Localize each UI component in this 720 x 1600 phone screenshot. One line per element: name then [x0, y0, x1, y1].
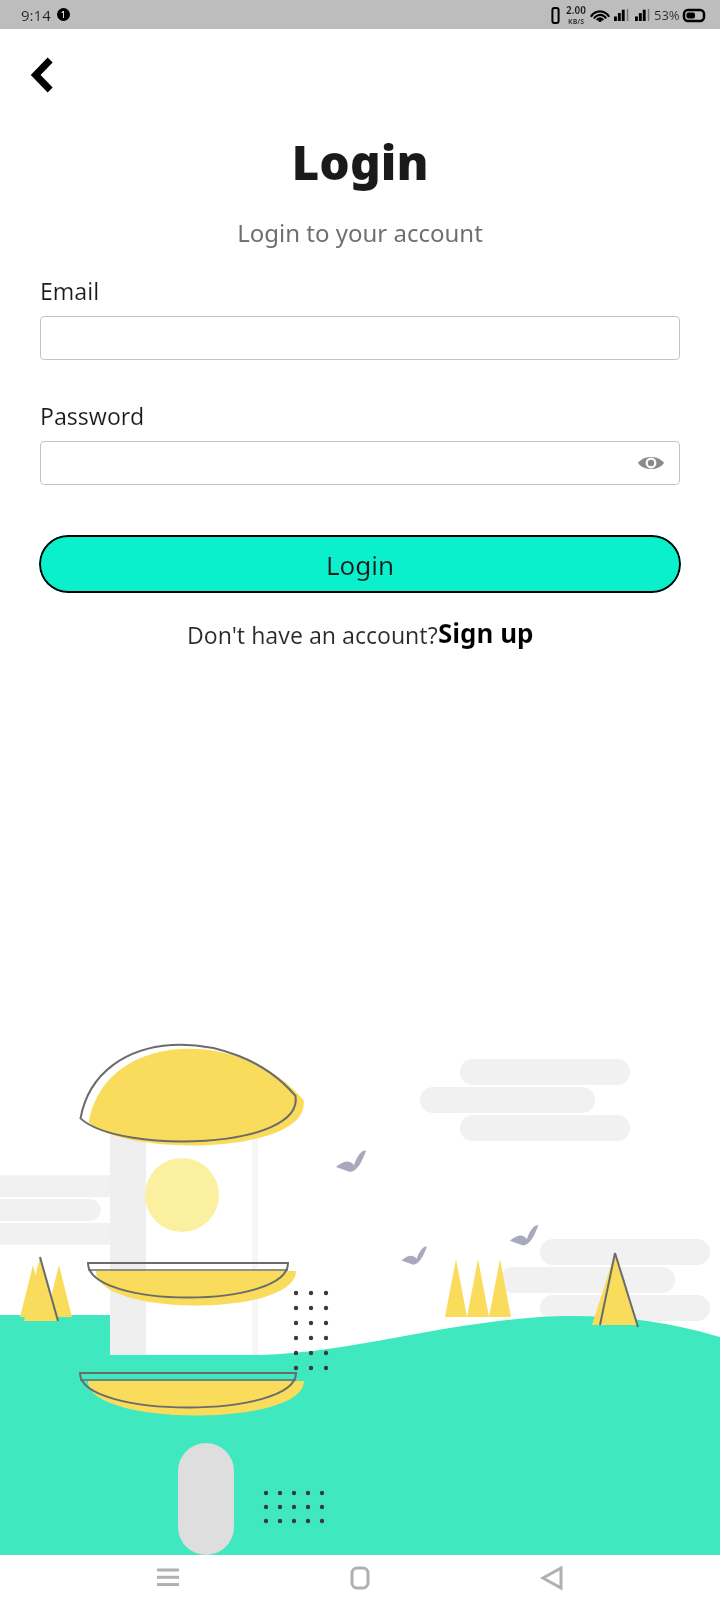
button[interactable]: Back [528, 1555, 576, 1600]
button[interactable]: Back [16, 47, 72, 103]
staticText: KB/S [568, 17, 585, 27]
staticText: 53% [654, 6, 680, 24]
button[interactable]: Home [336, 1555, 384, 1600]
staticText: Password [40, 400, 145, 431]
staticText: Login to your account [0, 216, 720, 249]
button[interactable]: Recent apps [144, 1555, 192, 1600]
button[interactable]: Login [39, 535, 681, 593]
staticText: Don't have an account? [187, 619, 438, 650]
button[interactable]: Show password [40, 441, 680, 485]
button[interactable]: Sign up [438, 615, 534, 650]
staticText: 2.00 [566, 3, 586, 17]
staticText: Login [326, 547, 395, 582]
staticText: 1 [61, 9, 66, 20]
staticText: Login [0, 129, 720, 194]
staticText: Sign up [438, 615, 534, 650]
staticText: Email [40, 275, 100, 306]
staticText: 9:14 [21, 5, 51, 25]
button[interactable]: Show password [636, 448, 666, 478]
button[interactable] [40, 316, 680, 360]
